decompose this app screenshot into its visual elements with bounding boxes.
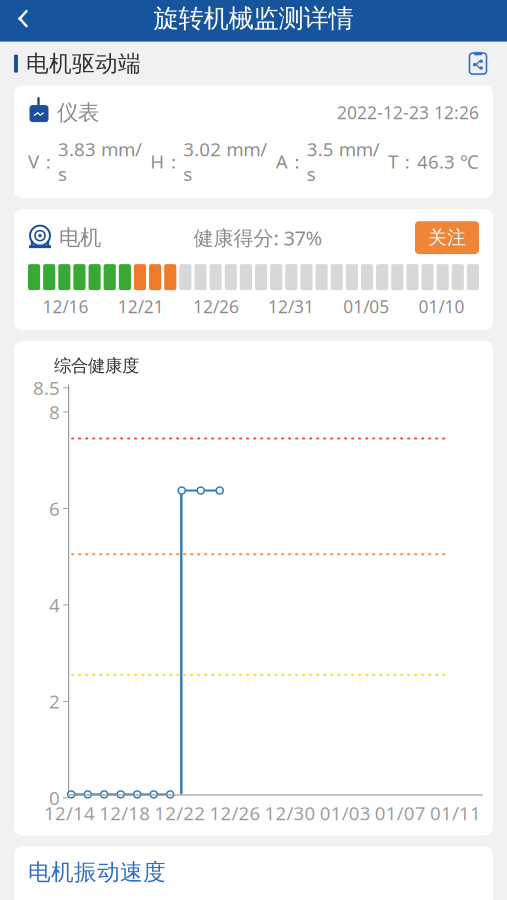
staticText: 电机驱动端 (26, 50, 141, 77)
staticText: 01/11 (430, 801, 481, 825)
staticText: 4 (49, 592, 60, 617)
staticText: 6 (49, 496, 60, 521)
staticText: 12/18 (99, 801, 150, 825)
staticText: 旋转机械监测详情 (153, 3, 353, 34)
staticText: 12/21 (118, 295, 164, 318)
staticText: V： (28, 149, 58, 174)
staticText: 01/05 (343, 295, 389, 318)
staticText: 3.83 mm/s (58, 137, 142, 186)
button[interactable]: 返回 (0, 0, 46, 42)
staticText: 2022-12-23 12:26 (337, 101, 479, 124)
staticText: 3.5 mm/s (307, 137, 380, 186)
staticText: 46.3 ℃ (417, 149, 479, 174)
staticText: 综合健康度 (54, 355, 139, 376)
staticText: 0 (49, 785, 60, 810)
staticText: T： (388, 149, 417, 174)
staticText: 8 (49, 399, 60, 424)
button[interactable]: 分享 (463, 49, 493, 79)
staticText: 12/26 (209, 801, 260, 825)
staticText: 关注 (428, 226, 466, 249)
staticText: 12/22 (154, 801, 205, 825)
staticText: 12/30 (265, 801, 316, 825)
staticText: 电机 (59, 224, 101, 251)
staticText: 健康得分: 37% (193, 224, 322, 251)
staticText: A： (276, 149, 307, 174)
staticText: 3.02 mm/s (183, 137, 267, 186)
staticText: 12/26 (193, 295, 239, 318)
staticText: 12/14 (44, 801, 95, 825)
staticText: 12/31 (268, 295, 314, 318)
staticText: 电机振动速度 (28, 858, 166, 886)
staticText: H： (150, 149, 183, 174)
staticText: 01/10 (418, 295, 464, 318)
staticText: 01/07 (375, 801, 426, 825)
button[interactable]: 关注 (415, 221, 479, 254)
staticText: 2 (49, 689, 60, 714)
staticText: 8.5 (33, 375, 60, 400)
staticText: 仪表 (57, 99, 99, 126)
staticText: 12/16 (43, 295, 89, 318)
staticText: 01/03 (320, 801, 371, 825)
